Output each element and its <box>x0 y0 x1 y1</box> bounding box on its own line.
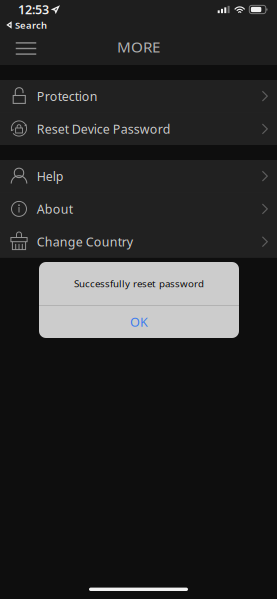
staticText: 12:53 <box>18 1 49 18</box>
button[interactable]: Protection <box>0 80 277 112</box>
button[interactable]: Help <box>0 160 277 192</box>
staticText: MORE <box>117 36 160 57</box>
button[interactable]: About <box>0 193 277 225</box>
staticText: About <box>37 200 73 217</box>
staticText: Search <box>15 19 47 31</box>
button[interactable]: OK <box>39 306 239 338</box>
staticText: Change Country <box>37 233 133 250</box>
staticText: Protection <box>37 88 98 105</box>
button[interactable]: Reset Device Password <box>0 113 277 145</box>
button[interactable]: Menu <box>9 32 43 65</box>
staticText: Successfully reset password <box>74 277 204 290</box>
staticText: Help <box>37 168 64 185</box>
staticText: OK <box>130 313 148 330</box>
staticText: Reset Device Password <box>37 120 171 137</box>
button[interactable]: Change Country <box>0 226 277 258</box>
